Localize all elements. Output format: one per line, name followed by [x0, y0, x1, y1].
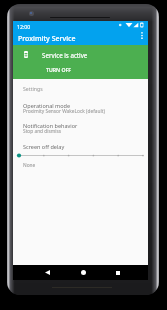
button[interactable]	[13, 151, 148, 160]
button[interactable]: More options	[137, 30, 147, 40]
button[interactable]: TURN OFF	[40, 64, 77, 75]
staticText: Operational mode	[23, 102, 71, 109]
staticText: Proximity Sensor WakeLock (default)	[23, 108, 105, 115]
staticText: TURN OFF	[46, 66, 71, 73]
button[interactable]	[13, 102, 148, 122]
button[interactable]	[13, 45, 148, 66]
staticText: 12:00	[17, 23, 31, 30]
staticText: Proximity Service	[18, 34, 76, 44]
staticText: Screen off delay	[23, 143, 65, 150]
staticText: None	[23, 162, 36, 169]
staticText: Stop and dismiss	[23, 128, 62, 135]
staticText: Notification behavior	[23, 122, 78, 129]
button[interactable]: Recent apps	[111, 265, 125, 280]
staticText: Settings	[23, 85, 43, 92]
staticText: Service is active	[42, 51, 88, 59]
button[interactable]: Back	[40, 265, 54, 280]
button[interactable]: Home	[76, 265, 90, 280]
button[interactable]	[13, 122, 148, 142]
